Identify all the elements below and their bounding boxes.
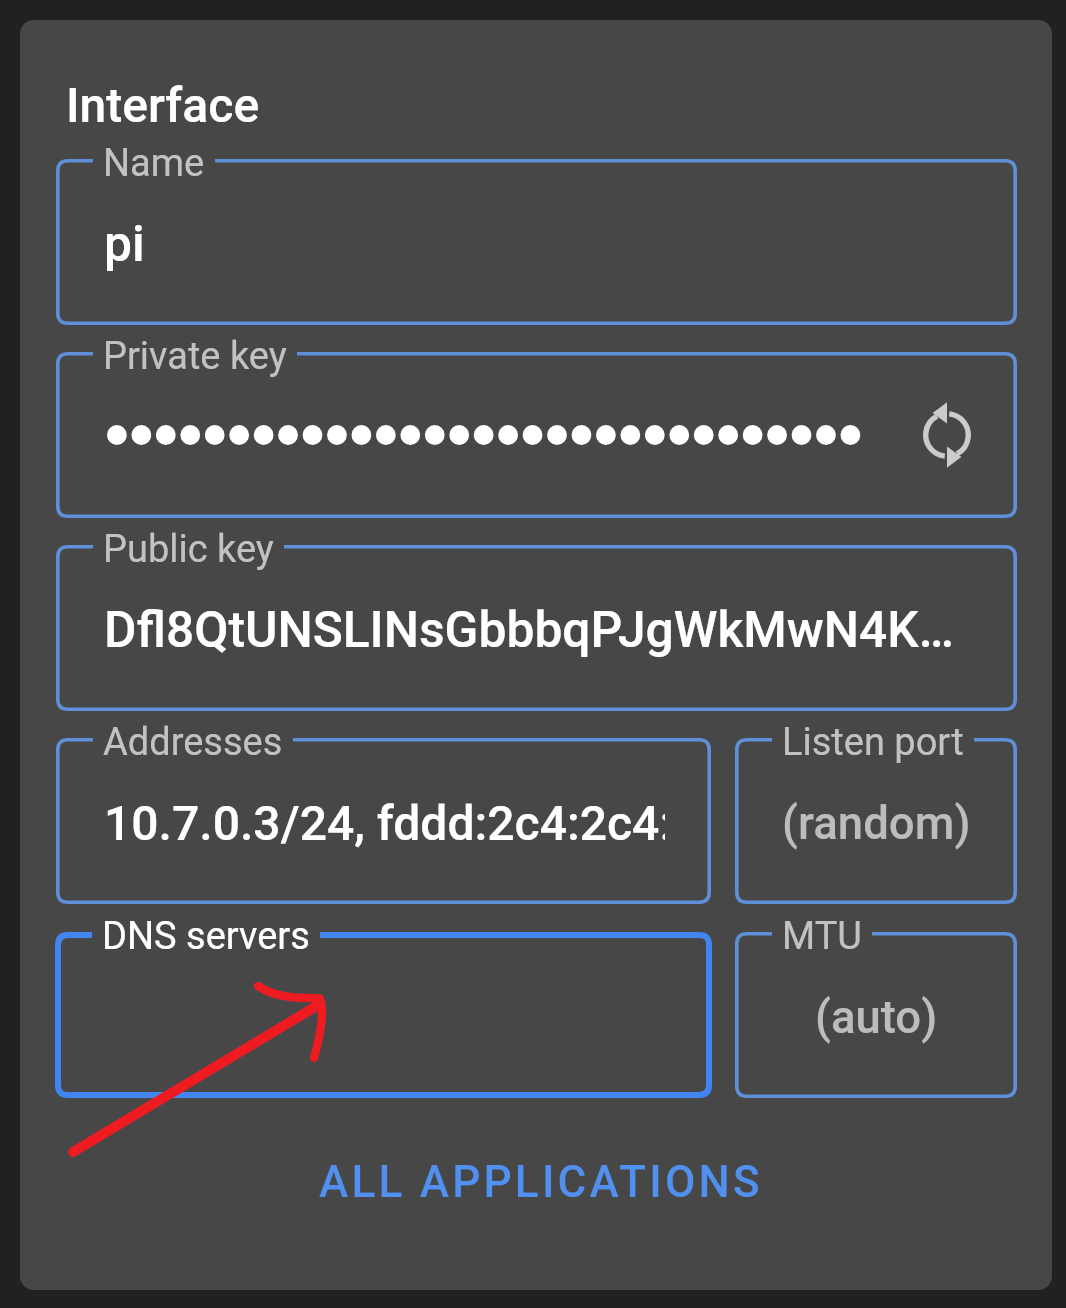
button[interactable]: Regenerate private key <box>899 387 995 483</box>
button[interactable]: ALL APPLICATIONS <box>25 1136 1052 1228</box>
staticText: Dfl8QtUNSLINsGbbbqPJgWkMwN4K… <box>104 601 954 659</box>
staticText: pi <box>104 215 145 273</box>
staticText: Private key <box>103 334 287 379</box>
button[interactable]: MTU <box>735 932 1017 1098</box>
staticText: Name <box>103 141 205 186</box>
button[interactable]: Public key <box>56 545 1017 711</box>
button[interactable]: Addresses <box>56 738 711 904</box>
staticText: Listen port <box>782 720 964 765</box>
staticText: ALL APPLICATIONS <box>319 1156 763 1208</box>
staticText: DNS servers <box>102 914 310 959</box>
staticText: (random) <box>782 797 971 850</box>
staticText: 10.7.0.3/24, fddd:2c4:2c4:2c4::1/128 <box>104 795 665 851</box>
staticText: Addresses <box>103 720 283 765</box>
button[interactable]: Listen port <box>735 738 1017 904</box>
button[interactable]: Name <box>56 159 1017 325</box>
staticText: Public key <box>103 527 274 572</box>
button[interactable]: Private key <box>56 352 1017 518</box>
staticText: Interface <box>66 77 260 133</box>
button[interactable]: DNS servers <box>55 932 712 1098</box>
staticText: (auto) <box>815 991 938 1044</box>
staticText: MTU <box>782 914 862 959</box>
